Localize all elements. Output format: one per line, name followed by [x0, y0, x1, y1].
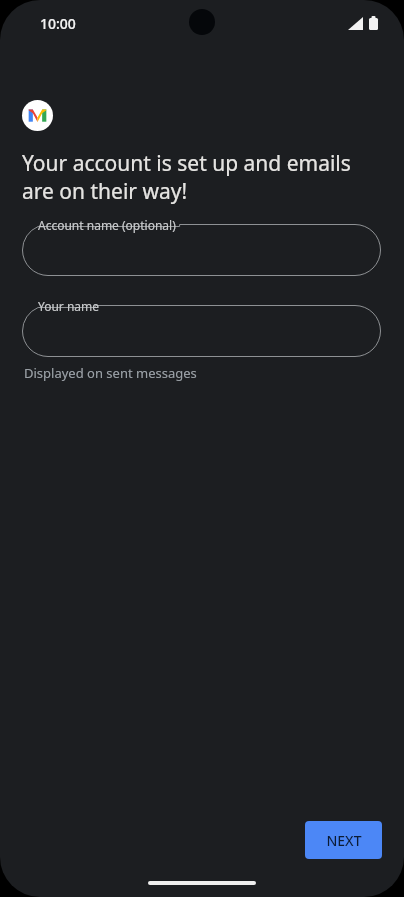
staticText: Displayed on sent messages [24, 364, 197, 382]
button[interactable]: NEXT [305, 821, 382, 859]
button[interactable]: Your name [22, 305, 381, 357]
staticText: 10:00 [40, 14, 76, 33]
button[interactable]: Account name (optional) [22, 224, 381, 276]
staticText: Your name [38, 298, 100, 314]
staticText: NEXT [326, 831, 362, 850]
staticText: Account name (optional) [38, 217, 176, 233]
staticText: Your account is set up and emails are on… [22, 149, 381, 205]
